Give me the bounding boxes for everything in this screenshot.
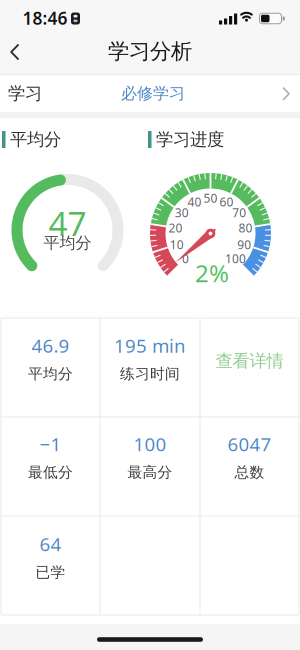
staticText: 2% — [195, 257, 229, 289]
staticText: 6047 — [227, 432, 271, 456]
button[interactable]: 查看详情 — [200, 312, 298, 409]
staticText: 10 — [170, 236, 184, 252]
staticText: 90 — [237, 236, 251, 252]
staticText: 平均分 — [43, 233, 91, 253]
staticText: 查看详情 — [215, 350, 283, 372]
staticText: 64 — [39, 532, 61, 556]
staticText: 47 — [48, 201, 86, 245]
staticText: 100 — [133, 432, 166, 456]
staticText: 平均分 — [28, 365, 73, 383]
staticText: 学习分析 — [108, 38, 192, 65]
staticText: 总数 — [234, 463, 264, 481]
staticText: 20 — [168, 220, 182, 236]
staticText: 50 — [203, 190, 217, 206]
staticText: 70 — [232, 205, 246, 221]
staticText: 30 — [175, 205, 189, 221]
button[interactable]: Back — [0, 23, 44, 63]
staticText: 最高分 — [127, 463, 172, 481]
staticText: 0 — [182, 251, 189, 266]
staticText: 40 — [187, 194, 201, 210]
staticText: 最低分 — [28, 463, 73, 481]
staticText: 100 — [225, 251, 246, 266]
staticText: 学习进度 — [156, 129, 224, 150]
staticText: 平均分 — [10, 129, 61, 150]
staticText: 195 min — [114, 333, 186, 358]
staticText: 46.9 — [31, 333, 69, 358]
staticText: 学习 — [8, 83, 42, 104]
staticText: 已学 — [35, 563, 65, 581]
staticText: 练习时间 — [120, 365, 180, 383]
staticText: 80 — [239, 220, 253, 236]
staticText: 18:46 — [22, 6, 67, 29]
staticText: 60 — [220, 194, 234, 210]
staticText: −1 — [39, 432, 61, 456]
button[interactable]: 学习 — [0, 75, 300, 112]
staticText: 必修学习 — [121, 84, 185, 103]
